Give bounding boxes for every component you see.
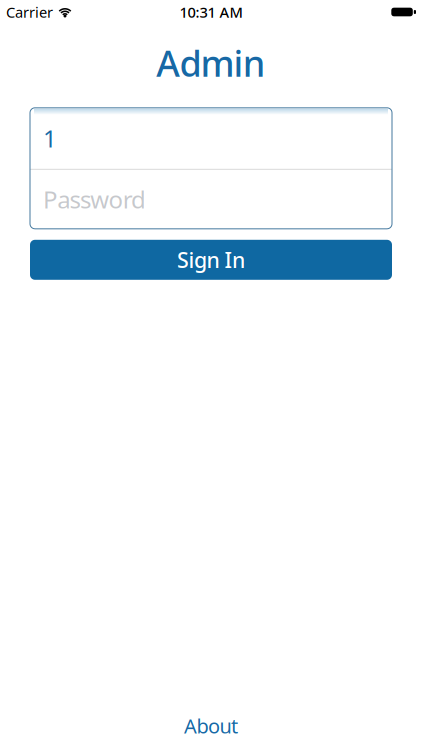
staticText: Sign In xyxy=(177,246,245,274)
staticText: About xyxy=(184,712,238,739)
button[interactable]: About xyxy=(184,712,238,739)
button[interactable]: Sign In xyxy=(30,240,392,280)
staticText: 10:31 AM xyxy=(179,2,242,22)
button[interactable]: Password xyxy=(30,170,392,229)
staticText: Admin xyxy=(156,39,266,87)
staticText: 1 xyxy=(43,122,57,154)
button[interactable]: 1 xyxy=(30,108,392,169)
staticText: Carrier xyxy=(6,2,53,22)
staticText: Password xyxy=(43,183,146,215)
